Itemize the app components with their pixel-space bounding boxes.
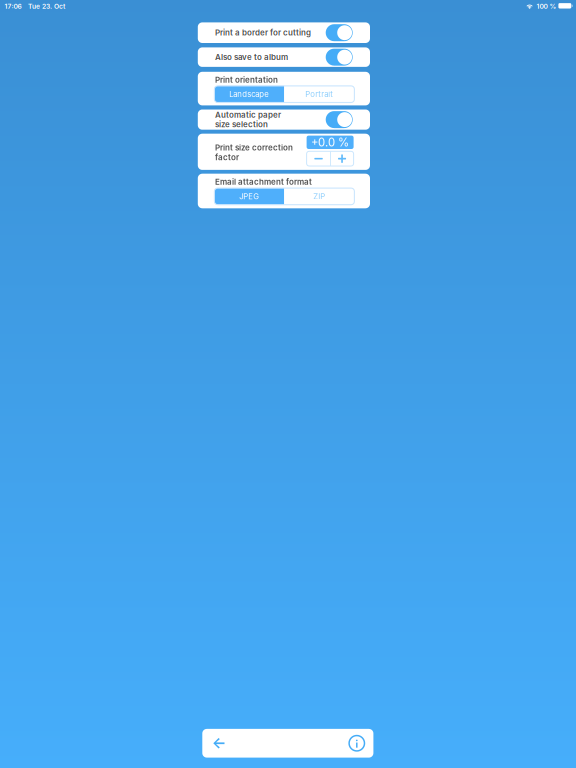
staticText: Print a border for cutting — [215, 28, 311, 38]
staticText: Automatic paper — [215, 110, 281, 120]
staticText: +0.0 % — [311, 135, 349, 149]
button[interactable]: Info — [345, 729, 369, 758]
button[interactable]: ZIP — [284, 188, 354, 205]
staticText: Email attachment format — [215, 177, 312, 187]
button[interactable]: Decrease — [307, 151, 330, 166]
staticText: Tue 23. Oct — [28, 2, 65, 10]
button[interactable]: Automatic paper — [198, 109, 370, 130]
button[interactable]: Back — [207, 729, 231, 758]
button[interactable]: Landscape — [214, 86, 284, 102]
staticText: ZIP — [313, 192, 325, 201]
button[interactable]: Also save to album — [198, 47, 370, 67]
staticText: JPEG — [239, 192, 259, 201]
staticText: Print orientation — [215, 75, 278, 85]
staticText: 17:06 — [4, 2, 21, 10]
button[interactable]: Portrait — [284, 86, 354, 102]
staticText: Also save to album — [215, 52, 288, 62]
staticText: Landscape — [229, 89, 269, 99]
staticText: size selection — [215, 120, 268, 129]
staticText: Print size correction — [215, 143, 293, 152]
staticText: factor — [215, 152, 239, 162]
staticText: 100 % — [536, 2, 556, 10]
staticText: Portrait — [305, 89, 333, 99]
button[interactable]: JPEG — [214, 188, 284, 205]
button[interactable]: Print a border for cutting — [198, 22, 370, 43]
button[interactable]: Increase — [330, 151, 354, 166]
